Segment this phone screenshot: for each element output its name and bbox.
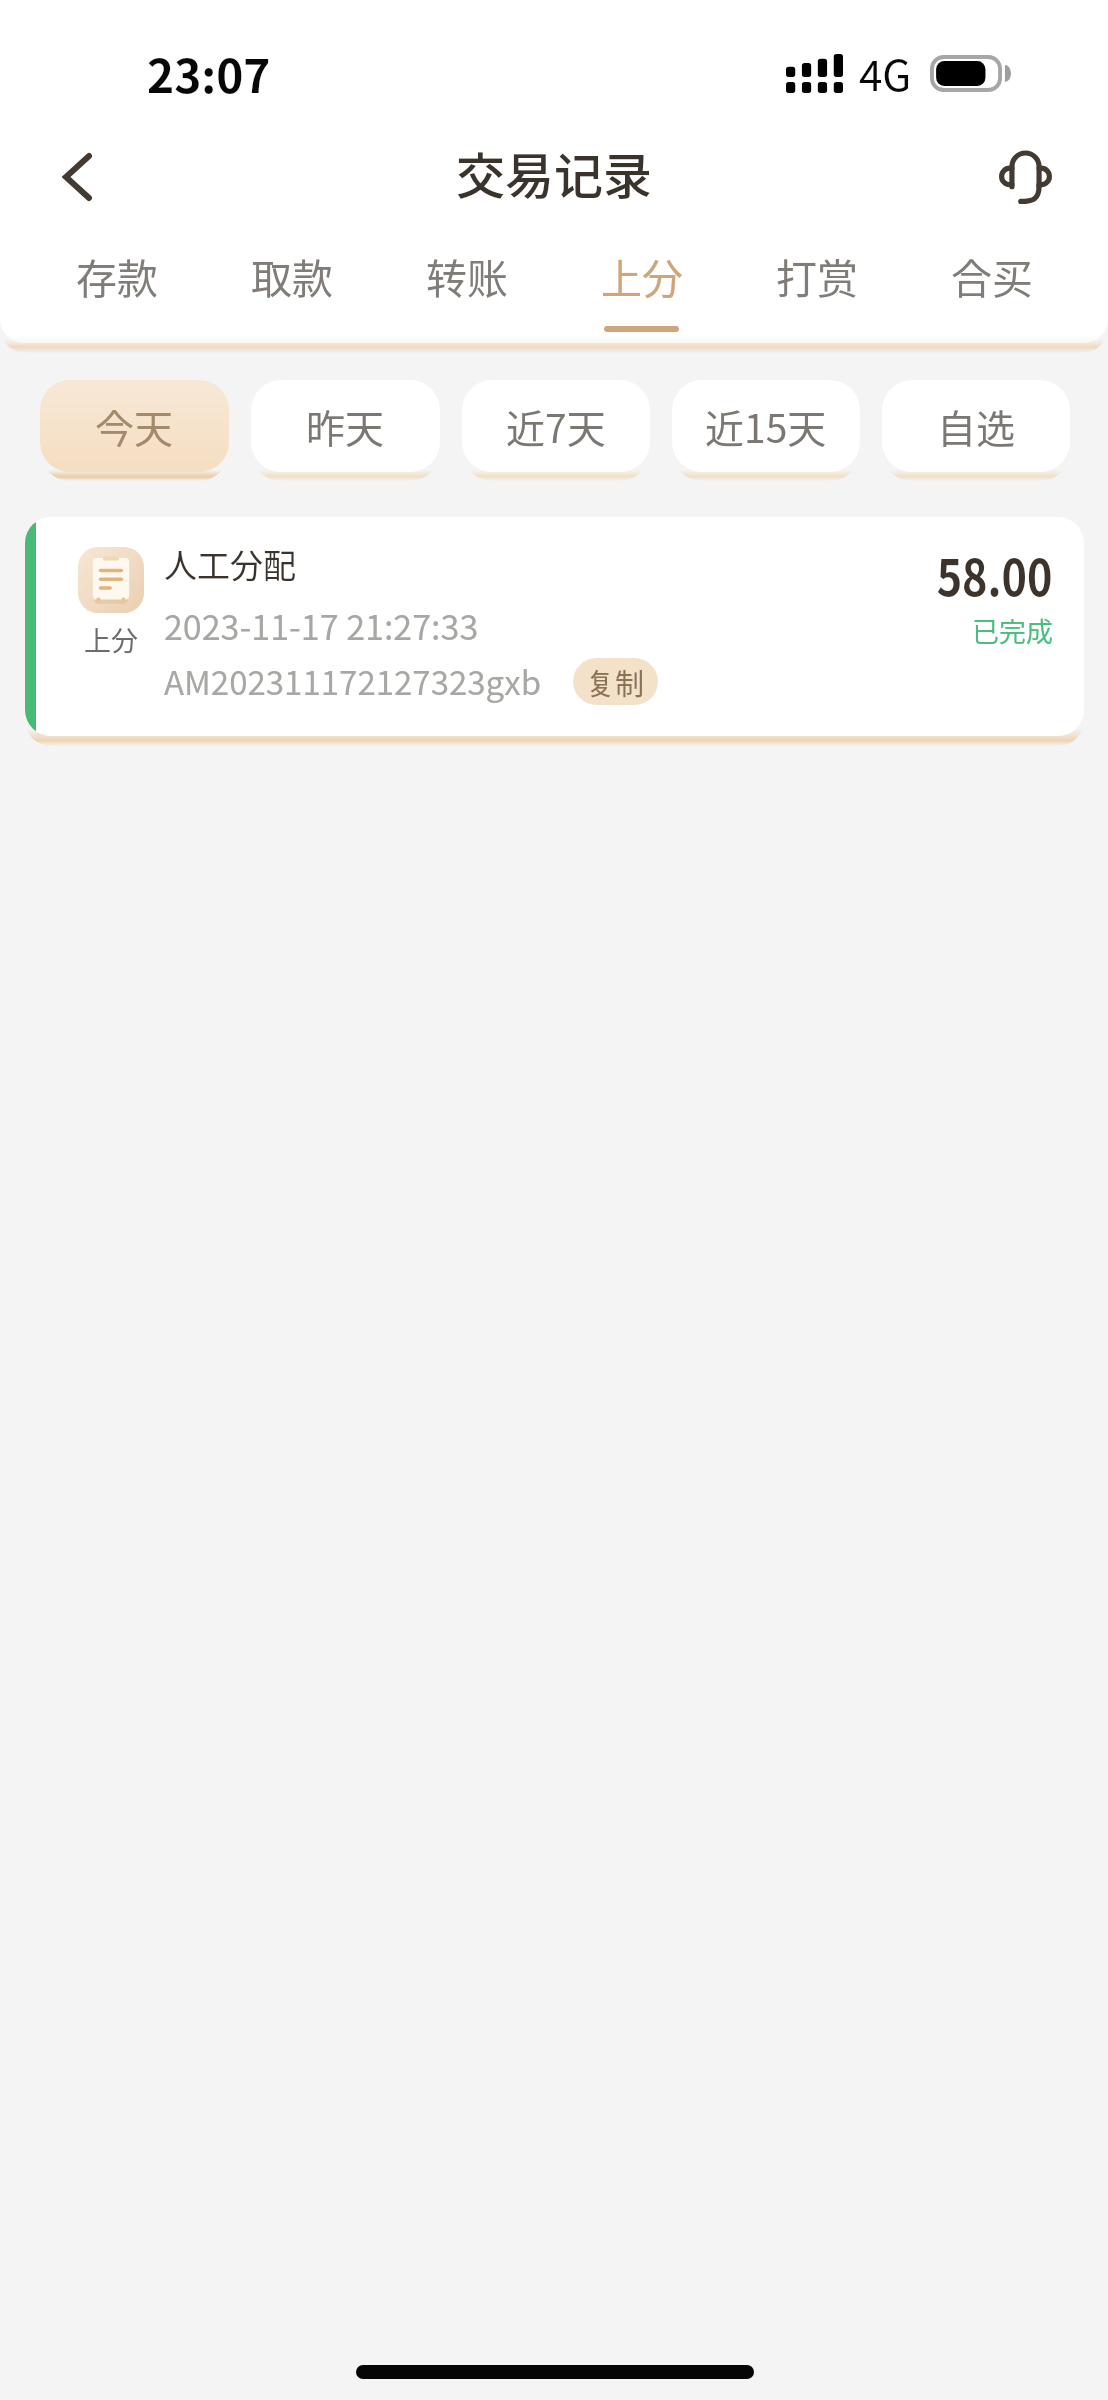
button[interactable]: 转账 bbox=[379, 227, 554, 341]
staticText: 昨天 bbox=[306, 398, 385, 454]
staticText: 上分 bbox=[84, 620, 138, 659]
button[interactable]: Back bbox=[27, 127, 127, 227]
staticText: 交易记录 bbox=[456, 137, 653, 208]
staticText: 人工分配 bbox=[164, 540, 296, 588]
staticText: 4G bbox=[859, 42, 912, 103]
button[interactable]: 今天 bbox=[40, 380, 229, 472]
staticText: 合买 bbox=[951, 246, 1033, 305]
button[interactable]: 昨天 bbox=[251, 380, 440, 472]
button[interactable]: 自选 bbox=[882, 380, 1070, 472]
staticText: 2023-11-17 21:27:33 bbox=[164, 601, 479, 650]
staticText: 取款 bbox=[251, 246, 333, 305]
staticText: 复制 bbox=[586, 661, 645, 703]
button[interactable]: 打赏 bbox=[729, 227, 904, 341]
staticText: 存款 bbox=[76, 246, 158, 305]
staticText: 近15天 bbox=[705, 398, 827, 454]
button[interactable]: 合买 bbox=[904, 227, 1079, 341]
staticText: 已完成 bbox=[972, 611, 1053, 650]
button[interactable]: 上分 bbox=[554, 227, 729, 341]
button[interactable]: 取款 bbox=[204, 227, 379, 341]
staticText: 今天 bbox=[95, 398, 174, 454]
staticText: 23:07 bbox=[147, 40, 271, 107]
staticText: AM202311172127323gxb bbox=[164, 657, 542, 705]
button[interactable]: 近7天 bbox=[462, 380, 650, 472]
button[interactable]: Customer service bbox=[975, 127, 1075, 227]
staticText: 近7天 bbox=[506, 398, 606, 454]
staticText: 转账 bbox=[426, 246, 508, 305]
button[interactable]: 近15天 bbox=[672, 380, 860, 472]
button[interactable]: 存款 bbox=[29, 227, 204, 341]
staticText: 58.00 bbox=[937, 538, 1053, 610]
button[interactable]: 复制 bbox=[573, 658, 658, 705]
staticText: 自选 bbox=[937, 398, 1016, 454]
staticText: 上分 bbox=[601, 246, 683, 305]
staticText: 打赏 bbox=[776, 246, 858, 305]
button[interactable]: 上分 bbox=[25, 517, 1084, 736]
